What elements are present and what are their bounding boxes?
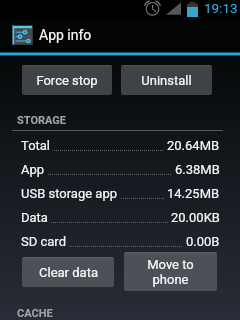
staticText: STORAGE	[17, 114, 67, 127]
staticText: 14.25MB	[167, 186, 220, 201]
button[interactable]: Clear data	[22, 257, 114, 287]
button[interactable]: App	[0, 157, 240, 181]
staticText: 0.00B	[186, 234, 220, 249]
staticText: Uninstall	[141, 73, 192, 88]
staticText: USB storage app	[21, 186, 118, 201]
button[interactable]: SD card	[0, 229, 240, 253]
button[interactable]: Force stop	[22, 65, 112, 95]
button[interactable]: Data	[0, 205, 240, 229]
staticText: CACHE	[17, 307, 53, 320]
button[interactable]: Move to phone	[124, 252, 217, 291]
staticText: Data	[21, 210, 48, 225]
staticText: Clear data	[39, 265, 98, 280]
staticText: 20.00KB	[171, 210, 220, 225]
staticText: App info	[39, 27, 92, 43]
staticText: App	[21, 162, 45, 177]
staticText: 20.64MB	[167, 138, 220, 153]
staticText: SD card	[21, 234, 66, 249]
staticText: Move to phone	[147, 257, 194, 287]
staticText: 6.38MB	[175, 162, 220, 177]
staticText: 19:13	[204, 0, 238, 16]
staticText: Total	[21, 138, 51, 153]
button[interactable]: Total	[0, 133, 240, 157]
button[interactable]: Uninstall	[121, 65, 212, 95]
staticText: Force stop	[36, 73, 98, 88]
button[interactable]: USB storage app	[0, 181, 240, 205]
